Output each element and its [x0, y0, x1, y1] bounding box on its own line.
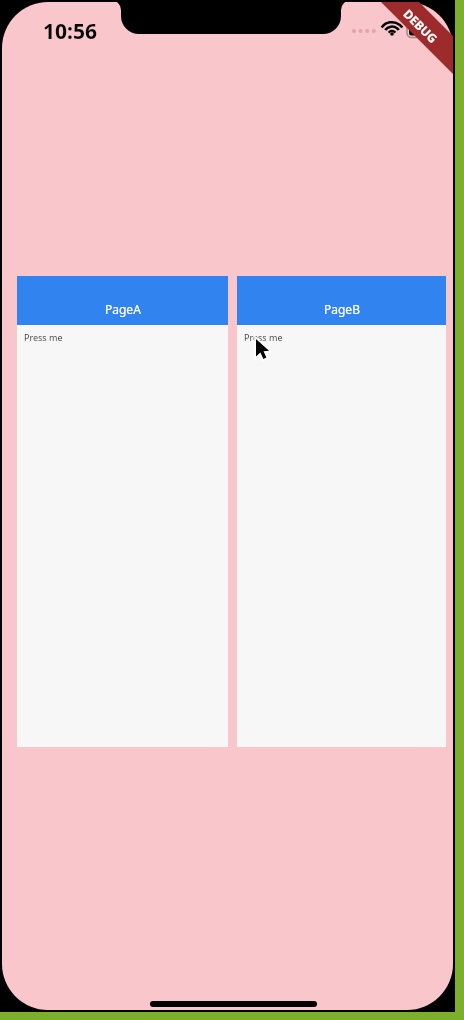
button[interactable]: Press me: [244, 331, 283, 343]
staticText: DEBUG: [400, 5, 441, 46]
button[interactable]: PageB: [237, 276, 446, 747]
staticText: PageA: [105, 301, 141, 317]
staticText: Press me: [244, 331, 283, 343]
button[interactable]: PageB: [237, 276, 446, 325]
button[interactable]: PageA: [17, 276, 228, 747]
staticText: 10:56: [43, 17, 97, 46]
button[interactable]: Press me: [24, 331, 63, 343]
staticText: PageB: [324, 301, 360, 317]
staticText: Press me: [24, 331, 63, 343]
button[interactable]: PageA: [17, 276, 228, 325]
